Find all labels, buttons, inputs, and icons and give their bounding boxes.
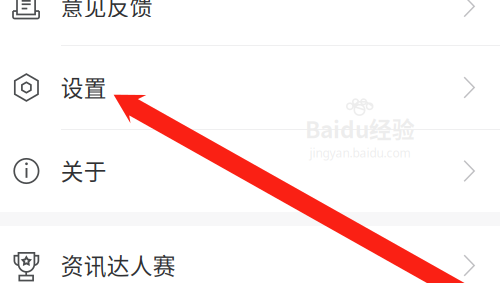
staticText: 资讯达人赛: [61, 248, 176, 281]
button[interactable]: 设置: [0, 46, 500, 129]
button[interactable]: 意见反馈: [0, 0, 500, 45]
staticText: Baidu经验: [305, 112, 415, 145]
staticText: 设置: [61, 70, 107, 103]
staticText: 关于: [61, 154, 107, 186]
button[interactable]: 关于: [0, 130, 500, 212]
staticText: 意见反馈: [61, 0, 153, 22]
staticText: jingyan.baidu.com: [309, 145, 410, 161]
button[interactable]: 资讯达人赛: [0, 226, 500, 283]
